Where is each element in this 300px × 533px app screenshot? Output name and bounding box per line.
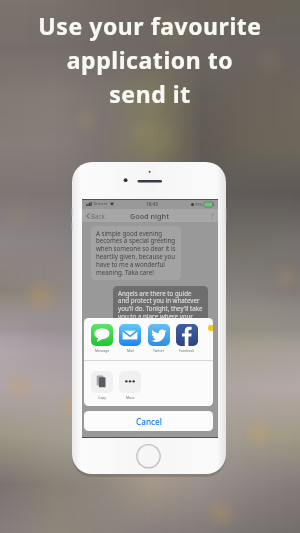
button[interactable]: Help: [207, 209, 218, 223]
button[interactable]: Mail: [119, 324, 141, 353]
staticText: Copy: [98, 395, 106, 400]
staticText: Message: [95, 348, 110, 353]
staticText: Angels are there to guide and protect yo…: [118, 289, 204, 329]
staticText: Good night: [130, 211, 170, 221]
button[interactable]: More: [119, 371, 141, 400]
staticText: 16:43: [146, 201, 158, 207]
staticText: Cancel: [136, 416, 162, 427]
staticText: ?: [211, 212, 214, 220]
button[interactable]: Back: [82, 209, 108, 223]
staticText: Back: [91, 212, 105, 220]
staticText: Telenet: [93, 201, 108, 207]
staticText: 99%: [195, 202, 203, 207]
staticText: Facebook: [179, 348, 195, 353]
staticText: Use your favourite application to send i…: [38, 10, 262, 109]
button[interactable]: Twitter: [148, 324, 170, 353]
staticText: Twitter: [153, 348, 165, 353]
button[interactable]: Facebook: [176, 324, 198, 353]
button[interactable]: Copy: [91, 371, 113, 400]
staticText: Mail: [127, 348, 134, 353]
staticText: More: [126, 395, 135, 400]
button[interactable]: Cancel: [84, 411, 213, 431]
button[interactable]: Message: [91, 324, 113, 353]
staticText: A simple good evening becomes a special …: [96, 229, 177, 277]
